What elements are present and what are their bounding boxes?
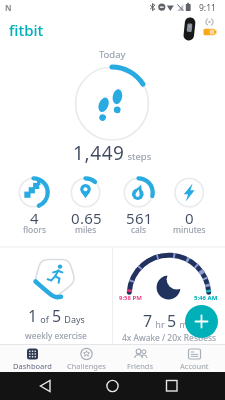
button[interactable]: 7 xyxy=(113,247,225,344)
staticText: N xyxy=(5,2,12,13)
staticText: 0.65 xyxy=(71,208,102,228)
staticText: Account xyxy=(180,361,209,371)
staticText: Today xyxy=(99,48,126,61)
staticText: floors xyxy=(23,224,46,236)
staticText: Challenges xyxy=(67,361,106,371)
button[interactable]: Friends xyxy=(113,344,167,372)
button[interactable] xyxy=(185,305,218,338)
staticText: minutes xyxy=(173,224,206,236)
button[interactable]: 1 xyxy=(0,247,112,344)
staticText: 9:58 PM xyxy=(119,294,142,302)
staticText: 0 xyxy=(185,208,194,228)
button[interactable]: Account xyxy=(167,344,221,372)
staticText: min xyxy=(177,318,196,330)
button[interactable]: Challenges xyxy=(59,344,113,372)
staticText: 9:11 xyxy=(199,2,216,14)
button[interactable] xyxy=(178,13,224,43)
staticText: Days xyxy=(62,313,85,325)
staticText: 561 xyxy=(126,208,153,228)
staticText: 4x Awake / 20x Restless xyxy=(122,332,217,344)
staticText: fitbit xyxy=(9,20,44,40)
button[interactable]: 0.65 xyxy=(59,176,113,234)
staticText: 1 xyxy=(28,305,38,327)
staticText: miles xyxy=(75,224,97,236)
staticText: 7 xyxy=(143,310,153,332)
staticText: 5 xyxy=(167,310,177,332)
button[interactable]: 561 xyxy=(112,176,166,234)
staticText: cals xyxy=(131,224,147,236)
button[interactable]: Dashboard xyxy=(6,344,59,372)
staticText: 5 xyxy=(52,305,62,327)
staticText: Dashboard xyxy=(13,361,52,371)
staticText: 5:46 AM xyxy=(194,294,218,302)
staticText: 4 xyxy=(30,208,39,228)
staticText: steps xyxy=(125,150,152,163)
button[interactable] xyxy=(75,66,150,141)
staticText: of xyxy=(38,313,52,325)
staticText: hr xyxy=(153,318,167,330)
button[interactable]: 4 xyxy=(7,176,61,234)
staticText: weekly exercise xyxy=(25,330,87,342)
button[interactable]: 0 xyxy=(162,176,216,234)
staticText: 1,449 xyxy=(73,140,125,166)
staticText: Friends xyxy=(127,361,153,371)
